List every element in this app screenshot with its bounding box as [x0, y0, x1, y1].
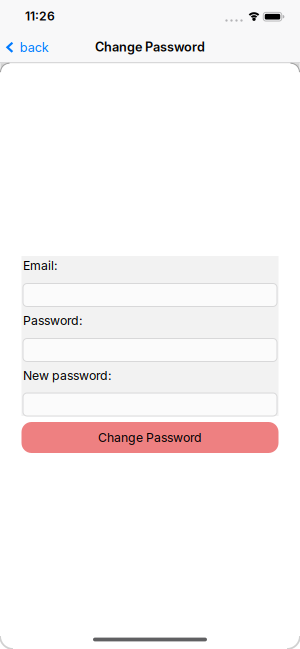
staticText: 11:26 [25, 9, 55, 23]
staticText: Password: [23, 313, 83, 328]
button[interactable]: Email [22, 283, 277, 307]
button[interactable]: New password [22, 392, 277, 416]
staticText: Change Password [95, 39, 205, 55]
button[interactable]: Change Password [21, 422, 278, 453]
button[interactable]: Password [22, 338, 277, 362]
staticText: Email: [23, 258, 58, 273]
staticText: back [20, 40, 49, 55]
staticText: Change Password [98, 430, 202, 445]
staticText: New password: [23, 368, 112, 383]
button[interactable]: Back [6, 40, 49, 55]
